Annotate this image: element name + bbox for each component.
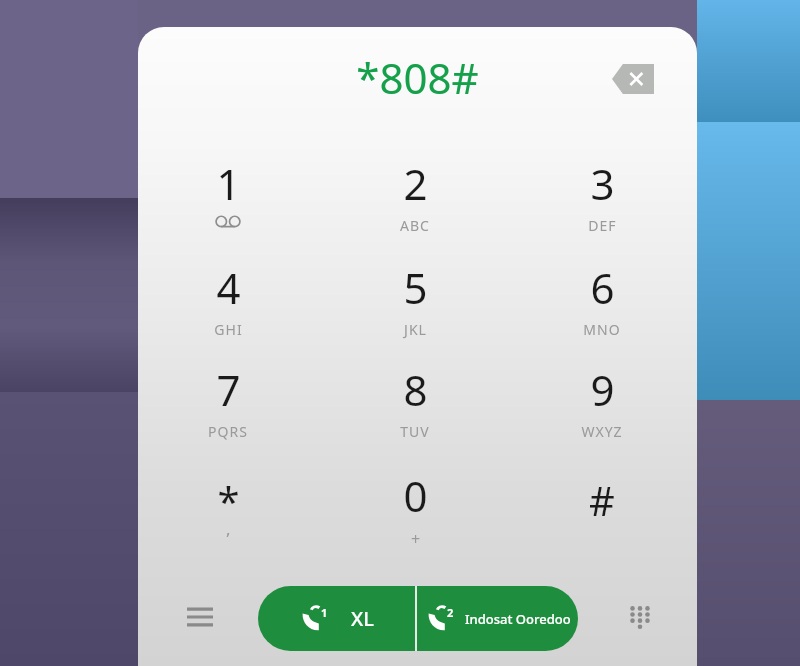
button[interactable]: 1	[153, 155, 303, 255]
button[interactable]: 0	[340, 467, 490, 567]
staticText: 2	[403, 155, 428, 212]
staticText: 1	[216, 155, 241, 212]
button[interactable]: 1	[258, 586, 415, 651]
button[interactable]: Menu	[174, 591, 226, 643]
staticText: GHI	[214, 320, 243, 339]
staticText: *808#	[356, 49, 479, 106]
staticText: 0	[403, 467, 428, 524]
staticText: TUV	[400, 422, 430, 441]
button[interactable]: 3	[527, 155, 677, 255]
staticText: DEF	[588, 216, 617, 235]
staticText: 6	[590, 259, 615, 316]
staticText: WXYZ	[581, 422, 623, 441]
button[interactable]: Dialpad	[614, 591, 666, 643]
staticText: Indosat Ooredoo	[465, 610, 571, 628]
button[interactable]: 9	[527, 361, 677, 461]
button[interactable]: 2	[417, 586, 578, 651]
staticText: *	[217, 473, 240, 527]
staticText: 5	[403, 259, 428, 316]
button[interactable]: #	[527, 467, 677, 567]
staticText: 8	[403, 361, 428, 418]
staticText: 4	[216, 259, 241, 316]
staticText: XL	[351, 605, 374, 632]
button[interactable]: 2	[340, 155, 490, 255]
staticText: #	[589, 473, 615, 527]
button[interactable]: 7	[153, 361, 303, 461]
button[interactable]: *	[153, 467, 303, 567]
staticText: ,	[226, 517, 231, 540]
staticText: 1	[321, 605, 328, 620]
staticText: 7	[216, 361, 241, 418]
staticText: MNO	[583, 320, 621, 339]
staticText: 2	[447, 605, 454, 620]
button[interactable]: 4	[153, 259, 303, 359]
button[interactable]: 5	[340, 259, 490, 359]
staticText: JKL	[404, 320, 427, 339]
staticText: 9	[590, 361, 615, 418]
staticText: PQRS	[208, 422, 248, 441]
button[interactable]: 6	[527, 259, 677, 359]
staticText: 3	[590, 155, 615, 212]
staticText: +	[411, 528, 421, 550]
staticText: ABC	[400, 216, 430, 235]
button[interactable]: Backspace	[605, 55, 661, 103]
button[interactable]: 8	[340, 361, 490, 461]
